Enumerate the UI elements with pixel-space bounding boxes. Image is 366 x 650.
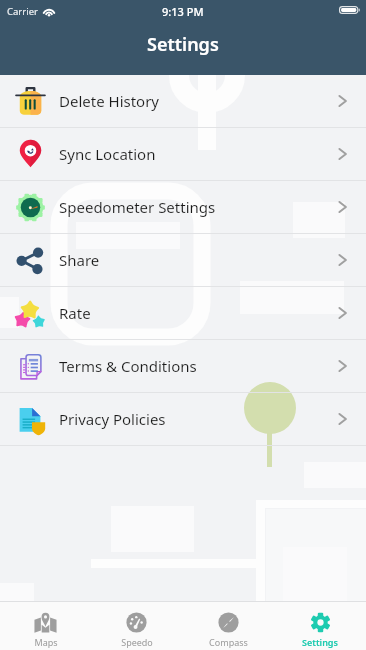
staticText: Carrier <box>7 5 38 18</box>
button[interactable]: Delete History <box>0 75 366 127</box>
button[interactable]: Privacy Policies <box>0 393 366 445</box>
staticText: Maps <box>34 636 58 648</box>
staticText: Privacy Policies <box>59 409 166 429</box>
staticText: Speedo <box>121 636 153 648</box>
staticText: Sync Location <box>59 144 156 164</box>
button[interactable]: Settings <box>274 601 366 650</box>
staticText: Compass <box>209 636 248 648</box>
button[interactable]: Speedometer Settings <box>0 181 366 233</box>
staticText: Terms & Conditions <box>59 356 197 376</box>
button[interactable]: Sync Location <box>0 128 366 180</box>
button[interactable]: Terms & Conditions <box>0 340 366 392</box>
staticText: Speedometer Settings <box>59 197 216 217</box>
button[interactable]: Maps <box>0 601 91 650</box>
button[interactable]: Compass <box>182 601 274 650</box>
button[interactable]: Rate <box>0 287 366 339</box>
button[interactable]: Speedo <box>91 601 182 650</box>
button[interactable]: Share <box>0 234 366 286</box>
staticText: Delete History <box>59 91 160 111</box>
staticText: Rate <box>59 303 91 323</box>
staticText: Share <box>59 250 100 270</box>
staticText: 9:13 PM <box>162 4 204 19</box>
staticText: Settings <box>147 32 219 57</box>
staticText: Settings <box>302 636 338 648</box>
